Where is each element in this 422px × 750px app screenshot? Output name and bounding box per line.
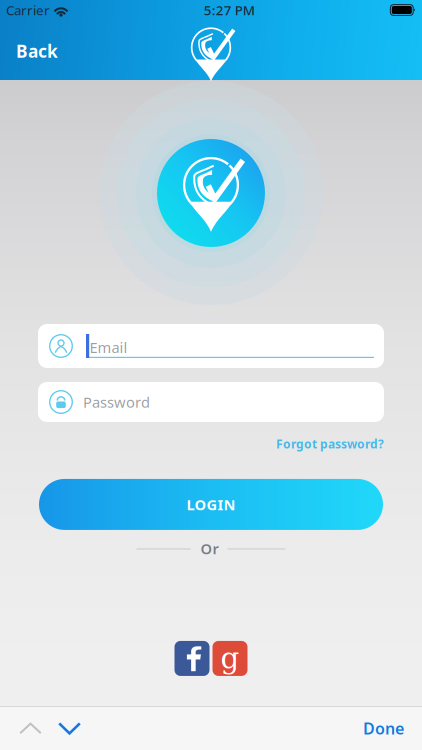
staticText: Or [200,539,218,558]
button[interactable]: Sign in with Google [212,641,247,676]
button[interactable]: Previous field [0,708,57,749]
staticText: 5:27 PM [204,1,255,19]
staticText: Password [83,392,150,412]
staticText: Forgot password? [276,436,384,452]
button[interactable]: Next field [57,708,82,749]
button[interactable]: LOGIN [39,479,383,530]
button[interactable]: Sign in with Facebook [174,641,209,676]
staticText: LOGIN [186,495,235,514]
button[interactable]: Forgot password? [275,432,383,452]
staticText: Carrier [6,1,50,19]
staticText: g [220,641,239,675]
staticText: Back [16,39,58,62]
staticText: Done [363,718,404,739]
button[interactable]: Done [345,707,422,750]
staticText: Email [89,337,127,357]
button[interactable]: Back [0,27,74,72]
